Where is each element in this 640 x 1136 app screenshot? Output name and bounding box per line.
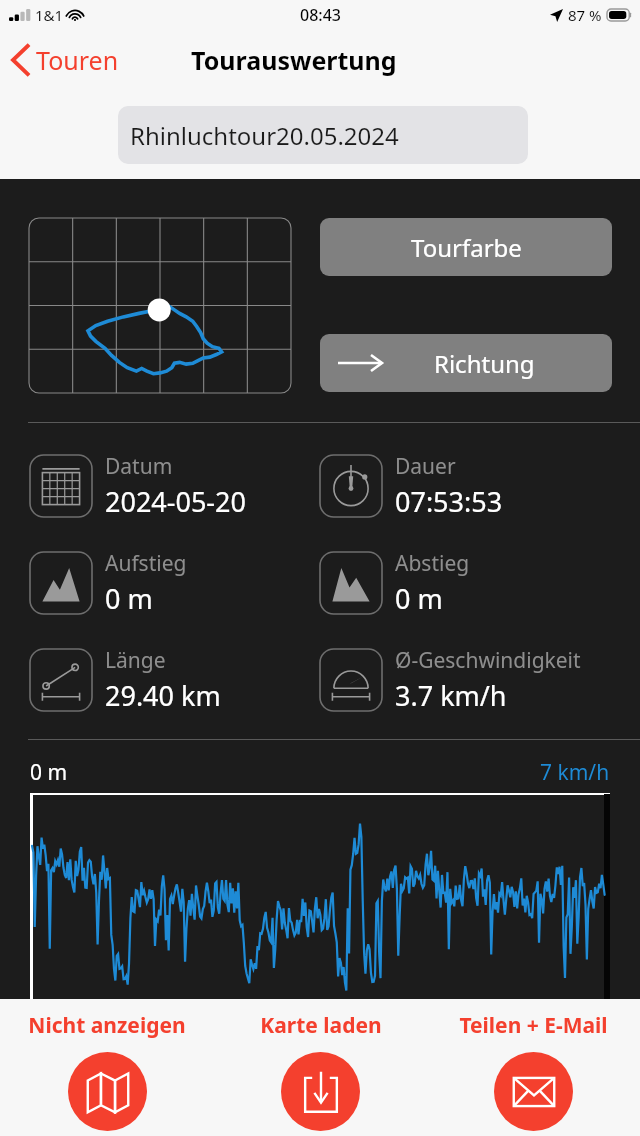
staticText: Karte laden bbox=[260, 1011, 382, 1040]
button[interactable]: Tourkarte bbox=[29, 218, 291, 393]
staticText: Nicht anzeigen bbox=[28, 1011, 186, 1040]
button[interactable]: Abstieg bbox=[320, 549, 620, 617]
staticText: 08:43 bbox=[300, 4, 341, 26]
staticText: Touren bbox=[36, 43, 119, 77]
staticText: Aufstieg bbox=[105, 549, 187, 578]
button[interactable]: Ø-Geschwindigkeit bbox=[320, 646, 620, 714]
button[interactable]: Teilen + E-Mail bbox=[427, 999, 640, 1136]
staticText: Ø-Geschwindigkeit bbox=[395, 646, 581, 675]
staticText: 87 % bbox=[568, 5, 602, 25]
staticText: Richtung bbox=[434, 347, 535, 380]
staticText: Tourfarbe bbox=[411, 231, 522, 264]
staticText: 29.40 km bbox=[105, 677, 221, 714]
staticText: Rhinluchtour20.05.2024 bbox=[130, 119, 399, 152]
button[interactable]: Aufstieg bbox=[30, 549, 320, 617]
other: Teilen + E-Mail bbox=[494, 1052, 573, 1131]
staticText: 1&1 bbox=[35, 5, 64, 25]
staticText: Dauer bbox=[395, 452, 456, 481]
staticText: 0 m bbox=[105, 580, 153, 617]
staticText: Länge bbox=[105, 646, 166, 675]
staticText: 7 km/h bbox=[540, 758, 610, 787]
staticText: Abstieg bbox=[395, 549, 470, 578]
staticText: 3.7 km/h bbox=[395, 677, 507, 714]
staticText: 0 m bbox=[395, 580, 443, 617]
button[interactable]: Datum bbox=[30, 452, 320, 520]
staticText: Teilen + E-Mail bbox=[459, 1011, 608, 1040]
button[interactable]: Dauer bbox=[320, 452, 620, 520]
button[interactable]: Richtung bbox=[320, 334, 612, 392]
staticText: 0 m bbox=[30, 758, 68, 787]
staticText: 07:53:53 bbox=[395, 483, 503, 520]
other: Karte laden bbox=[281, 1052, 360, 1131]
button[interactable]: Tourfarbe bbox=[320, 218, 612, 276]
button[interactable]: Nicht anzeigen bbox=[0, 999, 214, 1136]
button[interactable]: Rhinluchtour20.05.2024 bbox=[118, 106, 528, 164]
staticText: Datum bbox=[105, 452, 173, 481]
other: Nicht anzeigen bbox=[68, 1052, 147, 1131]
button[interactable]: Karte laden bbox=[214, 999, 427, 1136]
staticText: 2024-05-20 bbox=[105, 483, 246, 520]
button[interactable]: Touren bbox=[0, 39, 127, 81]
staticText: Tourauswertung bbox=[191, 43, 397, 77]
button[interactable]: Länge bbox=[30, 646, 320, 714]
